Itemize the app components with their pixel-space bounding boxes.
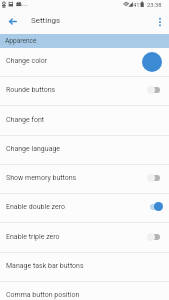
staticText: Change font (6, 116, 45, 124)
button[interactable]: Change color (0, 48, 169, 77)
button[interactable]: More options (152, 14, 168, 30)
staticText: Enable double zero (6, 203, 66, 211)
button[interactable]: Show memory buttons (0, 165, 169, 194)
button[interactable]: Enable double zero (0, 194, 169, 223)
staticText: Show memory buttons (6, 174, 77, 182)
staticText: 41% (133, 2, 144, 9)
staticText: Settings (31, 16, 61, 25)
staticText: Change color (6, 57, 48, 65)
button[interactable]: Manage task bar buttons (0, 253, 169, 282)
button[interactable]: Comma button position (0, 282, 169, 300)
button[interactable]: Change language (0, 136, 169, 165)
button[interactable]: Rounde buttons (0, 77, 169, 106)
button[interactable]: Change font (0, 107, 169, 136)
staticText: Apparence (5, 37, 37, 45)
staticText: Enable triple zero (6, 233, 60, 241)
staticText: Rounde buttons (6, 86, 56, 94)
button[interactable]: Enable triple zero (0, 224, 169, 253)
staticText: 23:38 (147, 2, 162, 9)
staticText: Comma button position (6, 291, 80, 299)
staticText: Manage task bar buttons (6, 262, 84, 270)
button[interactable]: Back (4, 14, 21, 31)
staticText: Change language (6, 145, 61, 153)
